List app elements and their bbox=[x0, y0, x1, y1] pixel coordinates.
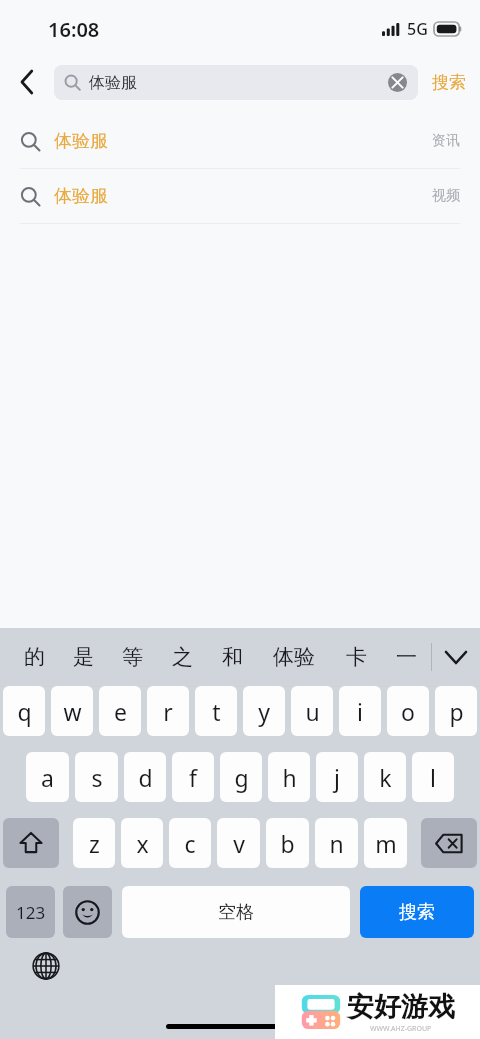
staticText: p bbox=[449, 696, 464, 727]
staticText: o bbox=[401, 696, 415, 727]
button[interactable]: Hide candidates bbox=[432, 628, 480, 686]
button[interactable]: f bbox=[172, 752, 214, 802]
button[interactable]: l bbox=[412, 752, 454, 802]
button[interactable]: 体验服 bbox=[0, 114, 480, 168]
button[interactable]: Switch keyboard language bbox=[24, 944, 68, 988]
button[interactable]: a bbox=[26, 752, 69, 802]
staticText: 体验服 bbox=[89, 73, 137, 93]
staticText: z bbox=[89, 828, 100, 859]
button[interactable]: n bbox=[315, 818, 358, 868]
button[interactable]: x bbox=[121, 818, 163, 868]
button[interactable]: z bbox=[73, 818, 115, 868]
button[interactable]: 之 bbox=[157, 628, 207, 686]
staticText: 卡 bbox=[346, 644, 367, 670]
staticText: WWW.AHZ-GROUP bbox=[370, 1024, 432, 1034]
button[interactable]: 等 bbox=[108, 628, 157, 686]
button[interactable]: Back bbox=[0, 58, 54, 106]
button[interactable]: 搜索 bbox=[418, 58, 480, 106]
staticText: w bbox=[63, 696, 82, 727]
button[interactable]: 卡 bbox=[331, 628, 381, 686]
button[interactable]: j bbox=[316, 752, 358, 802]
staticText: 资讯 bbox=[432, 132, 460, 150]
staticText: v bbox=[233, 828, 245, 859]
button[interactable]: 一 bbox=[381, 628, 431, 686]
button[interactable]: i bbox=[339, 686, 381, 736]
staticText: 搜索 bbox=[432, 72, 466, 93]
staticText: i bbox=[357, 696, 363, 727]
button[interactable]: 的 bbox=[10, 628, 59, 686]
staticText: t bbox=[212, 696, 221, 727]
staticText: a bbox=[41, 762, 54, 793]
button[interactable]: u bbox=[291, 686, 333, 736]
button[interactable]: k bbox=[364, 752, 406, 802]
staticText: 体验服 bbox=[54, 130, 108, 153]
button[interactable]: h bbox=[268, 752, 310, 802]
staticText: d bbox=[138, 762, 153, 793]
staticText: y bbox=[258, 696, 270, 727]
staticText: g bbox=[234, 762, 249, 793]
staticText: l bbox=[430, 762, 436, 793]
button[interactable]: s bbox=[75, 752, 118, 802]
staticText: m bbox=[375, 828, 397, 859]
staticText: 16:08 bbox=[48, 16, 100, 43]
button[interactable]: 和 bbox=[207, 628, 257, 686]
button[interactable]: 体验 bbox=[257, 628, 331, 686]
staticText: r bbox=[163, 696, 173, 727]
button[interactable]: e bbox=[99, 686, 141, 736]
button[interactable]: Backspace bbox=[421, 818, 477, 868]
staticText: 体验服 bbox=[54, 185, 108, 208]
button[interactable]: d bbox=[124, 752, 166, 802]
staticText: 123 bbox=[16, 901, 46, 924]
staticText: h bbox=[282, 762, 297, 793]
staticText: c bbox=[184, 828, 196, 859]
button[interactable]: b bbox=[266, 818, 309, 868]
button[interactable]: 体验服 bbox=[0, 169, 480, 223]
staticText: k bbox=[379, 762, 392, 793]
staticText: e bbox=[114, 696, 127, 727]
button[interactable]: c bbox=[169, 818, 211, 868]
staticText: 和 bbox=[222, 644, 243, 670]
staticText: b bbox=[280, 828, 295, 859]
staticText: f bbox=[189, 762, 197, 793]
button[interactable]: q bbox=[3, 686, 45, 736]
staticText: 安好游戏 bbox=[347, 990, 455, 1024]
button[interactable]: Emoji bbox=[63, 886, 112, 938]
button[interactable]: 123 bbox=[6, 886, 55, 938]
staticText: 体验 bbox=[273, 644, 315, 670]
button[interactable]: o bbox=[387, 686, 429, 736]
button[interactable]: 体验服 bbox=[54, 65, 418, 100]
button[interactable]: g bbox=[220, 752, 262, 802]
staticText: 是 bbox=[73, 644, 94, 670]
staticText: 的 bbox=[24, 644, 45, 670]
staticText: 之 bbox=[172, 644, 193, 670]
staticText: 搜索 bbox=[399, 901, 435, 924]
button[interactable]: p bbox=[435, 686, 477, 736]
button[interactable]: 空格 bbox=[122, 886, 350, 938]
staticText: 5G bbox=[407, 18, 428, 40]
staticText: q bbox=[17, 696, 32, 727]
staticText: u bbox=[305, 696, 320, 727]
staticText: x bbox=[136, 828, 149, 859]
staticText: 等 bbox=[122, 644, 143, 670]
staticText: n bbox=[329, 828, 344, 859]
staticText: 空格 bbox=[218, 901, 254, 924]
button[interactable]: Shift bbox=[3, 818, 59, 868]
button[interactable]: Clear text bbox=[380, 65, 415, 100]
staticText: j bbox=[334, 762, 340, 793]
button[interactable]: t bbox=[195, 686, 237, 736]
staticText: 视频 bbox=[432, 187, 460, 205]
button[interactable]: w bbox=[51, 686, 93, 736]
button[interactable]: 是 bbox=[59, 628, 108, 686]
button[interactable]: 搜索 bbox=[360, 886, 474, 938]
button[interactable]: m bbox=[364, 818, 407, 868]
staticText: s bbox=[91, 762, 103, 793]
staticText: 一 bbox=[396, 644, 417, 670]
button[interactable]: v bbox=[217, 818, 260, 868]
button[interactable]: r bbox=[147, 686, 189, 736]
button[interactable]: y bbox=[243, 686, 285, 736]
